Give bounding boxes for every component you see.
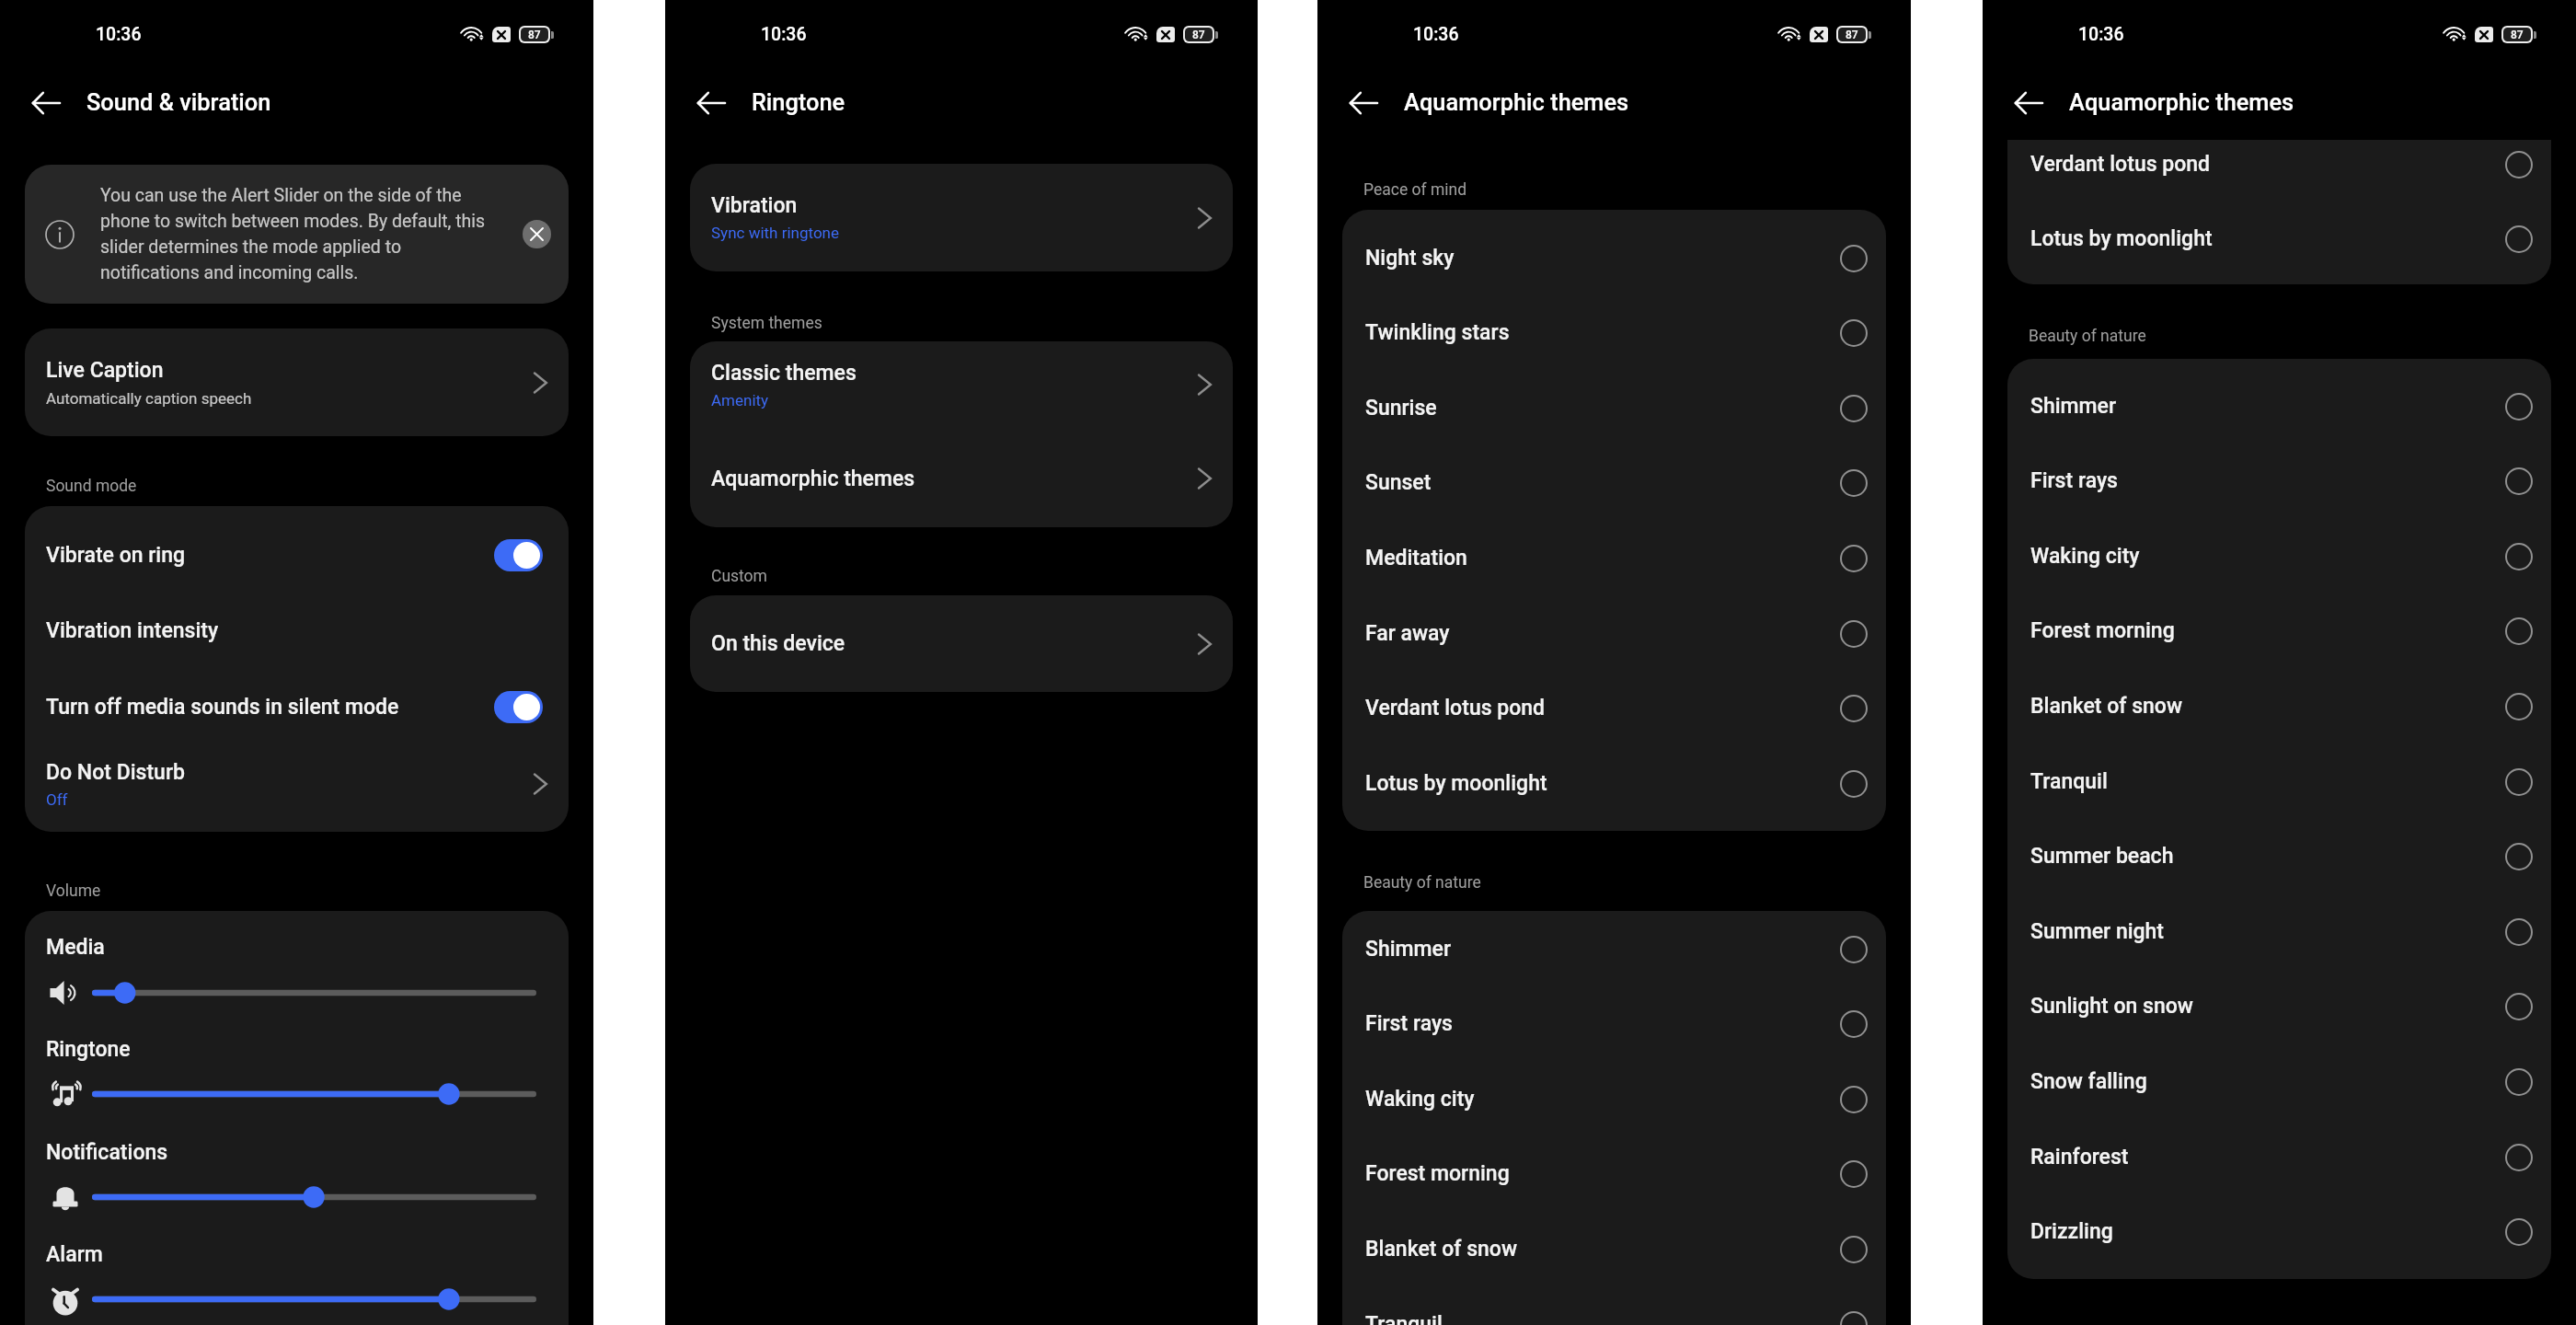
button[interactable]: Tranquil xyxy=(1342,1287,1886,1325)
staticText: System themes xyxy=(711,314,822,333)
staticText: First rays xyxy=(2030,468,2505,493)
staticText: Vibration xyxy=(711,193,798,218)
staticText: Blanket of snow xyxy=(2030,694,2505,719)
button[interactable]: Twinkling stars xyxy=(1342,295,1886,370)
staticText: Aquamorphic themes xyxy=(1404,88,1629,116)
staticText: 87 xyxy=(1846,29,1858,41)
staticText: Aquamorphic themes xyxy=(2069,88,2294,116)
button[interactable] xyxy=(494,539,543,571)
staticText: Volume xyxy=(46,881,101,901)
button[interactable]: Back xyxy=(689,81,733,125)
staticText: Sunrise xyxy=(1365,396,1840,421)
staticText: Snow falling xyxy=(2030,1069,2505,1094)
button[interactable]: Aquamorphic themes xyxy=(690,432,1233,524)
staticText: Aquamorphic themes xyxy=(711,467,915,491)
button[interactable]: Sunset xyxy=(1342,445,1886,520)
staticText: First rays xyxy=(1365,1011,1840,1036)
button[interactable]: Vibration intensity xyxy=(25,593,569,668)
staticText: Forest morning xyxy=(2030,618,2505,643)
button[interactable]: Ringtone volume xyxy=(92,1081,536,1107)
staticText: Verdant lotus pond xyxy=(2030,152,2505,177)
button[interactable]: Live Caption xyxy=(25,328,569,436)
staticText: Shimmer xyxy=(2030,394,2505,419)
staticText: Vibrate on ring xyxy=(46,543,494,568)
button[interactable]: Media volume xyxy=(92,980,536,1006)
button[interactable]: Blanket of snow xyxy=(1342,1212,1886,1286)
button[interactable]: Forest morning xyxy=(2007,593,2551,668)
staticText: Waking city xyxy=(2030,544,2505,569)
staticText: Custom xyxy=(711,567,767,586)
button[interactable]: First rays xyxy=(2007,444,2551,518)
button[interactable] xyxy=(494,691,543,723)
staticText: On this device xyxy=(711,631,845,656)
button[interactable]: Verdant lotus pond xyxy=(1342,671,1886,745)
button[interactable]: Shimmer xyxy=(1342,912,1886,986)
button[interactable]: Vibrate on ring xyxy=(25,517,569,593)
staticText: Rainforest xyxy=(2030,1145,2505,1169)
staticText: Lotus by moonlight xyxy=(2030,226,2505,251)
button[interactable]: Classic themes xyxy=(690,339,1233,431)
staticText: Beauty of nature xyxy=(1363,873,1481,893)
staticText: Lotus by moonlight xyxy=(1365,771,1840,796)
button[interactable]: Do Not Disturb xyxy=(25,736,569,832)
button[interactable]: Far away xyxy=(1342,596,1886,671)
button[interactable]: On this device xyxy=(690,595,1233,692)
button[interactable]: Lotus by moonlight xyxy=(2007,202,2551,276)
button[interactable]: Summer night xyxy=(2007,894,2551,969)
staticText: Turn off media sounds in silent mode xyxy=(46,695,494,720)
button[interactable]: Meditation xyxy=(1342,521,1886,595)
button[interactable]: Drizzling xyxy=(2007,1194,2551,1269)
staticText: Tranquil xyxy=(2030,769,2505,794)
staticText: 10:36 xyxy=(2078,24,2124,45)
staticText: 87 xyxy=(2511,29,2524,41)
staticText: Amenity xyxy=(711,391,769,409)
button[interactable]: Sunlight on snow xyxy=(2007,969,2551,1043)
button[interactable]: Verdant lotus pond xyxy=(2007,127,2551,202)
button[interactable]: Forest morning xyxy=(1342,1136,1886,1211)
staticText: Ringtone xyxy=(46,1037,131,1062)
button[interactable]: Summer beach xyxy=(2007,819,2551,893)
button[interactable]: Notifications volume xyxy=(92,1184,536,1210)
staticText: Verdant lotus pond xyxy=(1365,696,1840,720)
staticText: Shimmer xyxy=(1365,937,1840,962)
staticText: Forest morning xyxy=(1365,1161,1840,1186)
staticText: Summer beach xyxy=(2030,844,2505,869)
button[interactable]: Lotus by moonlight xyxy=(1342,746,1886,821)
button[interactable]: Alarm volume xyxy=(92,1286,536,1312)
button[interactable]: Snow falling xyxy=(2007,1044,2551,1119)
button[interactable]: Blanket of snow xyxy=(2007,669,2551,743)
staticText: 87 xyxy=(1192,29,1205,41)
staticText: Waking city xyxy=(1365,1087,1840,1112)
staticText: Classic themes xyxy=(711,361,857,386)
staticText: Twinkling stars xyxy=(1365,320,1840,345)
button[interactable]: Back xyxy=(2007,81,2051,125)
button[interactable]: Vibration xyxy=(690,164,1233,271)
staticText: Automatically caption speech xyxy=(46,389,252,408)
button[interactable]: Night sky xyxy=(1342,221,1886,295)
button[interactable]: Back xyxy=(1341,81,1386,125)
button[interactable]: Waking city xyxy=(2007,519,2551,593)
staticText: You can use the Alert Slider on the side… xyxy=(100,185,487,283)
staticText: Tranquil xyxy=(1365,1312,1840,1325)
button[interactable]: Tranquil xyxy=(2007,744,2551,819)
button[interactable]: Rainforest xyxy=(2007,1120,2551,1194)
staticText: Beauty of nature xyxy=(2029,327,2146,346)
staticText: Summer night xyxy=(2030,919,2505,944)
staticText: Media xyxy=(46,935,105,960)
staticText: Sync with ringtone xyxy=(711,224,840,242)
staticText: Blanket of snow xyxy=(1365,1237,1840,1262)
button[interactable]: Sunrise xyxy=(1342,371,1886,445)
staticText: Vibration intensity xyxy=(46,618,219,643)
staticText: Meditation xyxy=(1365,546,1840,570)
staticText: 10:36 xyxy=(96,24,142,45)
button[interactable]: Waking city xyxy=(1342,1062,1886,1136)
button[interactable]: First rays xyxy=(1342,986,1886,1061)
button[interactable]: Turn off media sounds in silent mode xyxy=(25,669,569,744)
staticText: Notifications xyxy=(46,1140,168,1165)
staticText: Far away xyxy=(1365,621,1840,646)
button[interactable]: Dismiss xyxy=(523,220,551,248)
staticText: Live Caption xyxy=(46,358,164,383)
button[interactable]: You can use the Alert Slider on the side… xyxy=(25,165,569,304)
button[interactable]: Back xyxy=(24,81,68,125)
button[interactable]: Shimmer xyxy=(2007,369,2551,444)
